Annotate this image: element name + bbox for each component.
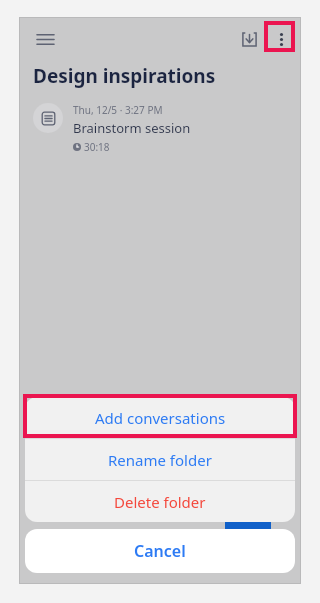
button[interactable]: Menu xyxy=(27,21,63,57)
staticText: Brainstorm session xyxy=(73,119,191,137)
button[interactable]: Delete folder xyxy=(25,481,295,522)
staticText: Design inspirations xyxy=(33,63,216,89)
button[interactable]: Cancel xyxy=(25,529,295,573)
button[interactable]: Thu, 12/5 · 3:27 PM xyxy=(19,101,301,160)
button[interactable]: Download xyxy=(233,23,265,55)
button[interactable]: More options xyxy=(265,23,297,55)
staticText: Cancel xyxy=(134,540,186,562)
staticText: Thu, 12/5 · 3:27 PM xyxy=(73,103,163,117)
staticText: Rename folder xyxy=(108,450,212,470)
button[interactable]: Add conversations xyxy=(25,397,295,438)
button[interactable]: New recording xyxy=(225,505,271,551)
staticText: Add conversations xyxy=(95,408,226,428)
staticText: 30:18 xyxy=(84,140,110,154)
staticText: Delete folder xyxy=(114,492,206,512)
button[interactable]: Rename folder xyxy=(25,439,295,480)
